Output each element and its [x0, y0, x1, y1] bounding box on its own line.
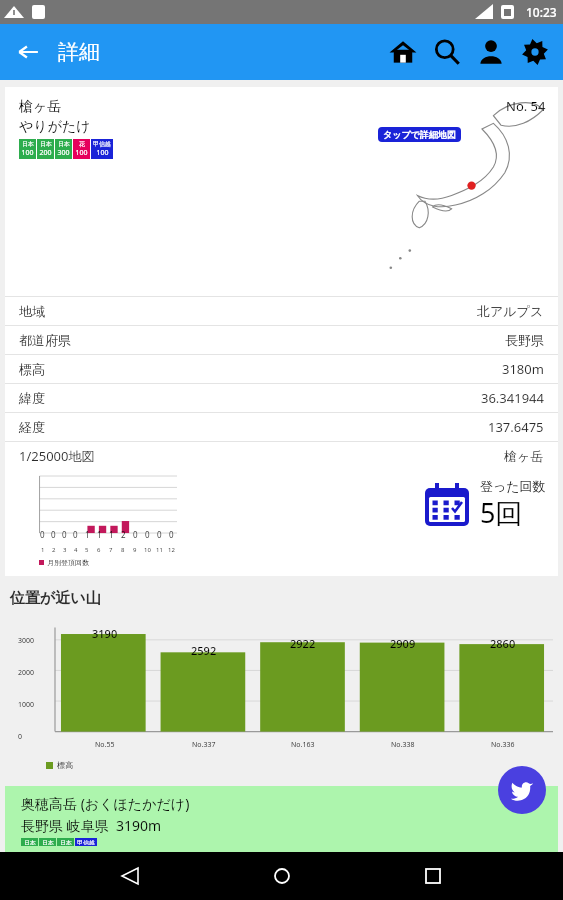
staticText: 0 — [145, 529, 150, 540]
staticText: No.336 — [491, 740, 515, 750]
staticText: 1/25000地図 — [19, 447, 95, 465]
staticText: 8 — [121, 546, 125, 554]
button[interactable]: Home — [381, 30, 425, 74]
staticText: 都道府県 — [19, 332, 71, 348]
staticText: 奥穂高岳 (おくほたかだけ) — [21, 794, 190, 813]
staticText: 0 — [73, 529, 78, 540]
button[interactable]: Share on Twitter — [498, 766, 546, 814]
button[interactable]: Account — [469, 30, 513, 74]
button[interactable]: Back — [8, 32, 48, 72]
staticText: 北アルプス — [477, 303, 544, 319]
staticText: 0 — [40, 529, 45, 540]
staticText: 100 — [96, 148, 109, 158]
staticText: 300 — [57, 148, 70, 158]
staticText: 地域 — [19, 303, 45, 319]
staticText: 月別登頂回数 — [47, 558, 89, 567]
staticText: No.55 — [95, 740, 115, 750]
button[interactable]: 奥穂高岳 (おくほたかだけ) — [5, 786, 558, 852]
staticText: 0 — [18, 732, 23, 742]
staticText: 0 — [62, 529, 67, 540]
staticText: 詳細 — [58, 39, 100, 65]
staticText: 槍ヶ岳 — [504, 448, 544, 464]
button[interactable]: Home — [261, 855, 303, 897]
staticText: 1 — [97, 529, 102, 540]
button[interactable]: 1/25000地図 — [5, 442, 558, 470]
staticText: 7 — [109, 546, 113, 554]
staticText: 36.341944 — [481, 389, 544, 407]
staticText: 1 — [85, 529, 90, 540]
staticText: 日本 — [22, 140, 34, 148]
button[interactable]: 都道府県 — [5, 326, 558, 354]
staticText: 2 — [52, 546, 56, 554]
staticText: タップで詳細地図 — [383, 129, 456, 140]
staticText: 1 — [41, 546, 45, 554]
button[interactable]: 経度 — [5, 413, 558, 441]
staticText: No.163 — [291, 740, 315, 750]
staticText: 1 — [109, 529, 114, 540]
staticText: 0 — [133, 529, 138, 540]
staticText: 12 — [168, 546, 175, 554]
staticText: 10 — [144, 546, 151, 554]
button[interactable]: No. 54 — [5, 87, 558, 576]
staticText: 日本 — [42, 839, 54, 845]
staticText: No.337 — [192, 740, 216, 750]
staticText: 甲信越 — [93, 140, 111, 148]
staticText: 9 — [133, 546, 137, 554]
staticText: 槍ヶ岳 — [19, 98, 62, 116]
staticText: 2000 — [18, 668, 35, 678]
staticText: 200 — [39, 148, 52, 158]
staticText: 緯度 — [19, 390, 45, 406]
staticText: 2909 — [390, 636, 416, 651]
button[interactable]: 標高 — [5, 355, 558, 383]
button[interactable]: タップで詳細地図 — [378, 127, 461, 142]
staticText: 100 — [75, 148, 88, 158]
staticText: No.338 — [391, 740, 415, 750]
staticText: 長野県 — [505, 332, 544, 348]
staticText: 日本 — [58, 140, 70, 148]
staticText: 2860 — [490, 636, 516, 651]
staticText: 3180m — [502, 360, 544, 378]
staticText: 登った回数 — [480, 478, 546, 494]
staticText: 標高 — [57, 760, 73, 770]
staticText: 3000 — [18, 636, 35, 646]
staticText: 0 — [169, 529, 174, 540]
staticText: 標高 — [19, 361, 45, 377]
staticText: 137.6475 — [488, 418, 544, 436]
button[interactable]: Recents — [412, 855, 454, 897]
button[interactable]: Search — [425, 30, 469, 74]
staticText: 5 — [85, 546, 89, 554]
staticText: 100 — [21, 148, 34, 158]
staticText: やりがたけ — [19, 118, 91, 136]
staticText: 6 — [97, 546, 101, 554]
button[interactable]: 緯度 — [5, 384, 558, 412]
staticText: 0 — [51, 529, 56, 540]
staticText: 1000 — [18, 700, 35, 710]
staticText: 4 — [74, 546, 78, 554]
staticText: 11 — [156, 546, 163, 554]
staticText: 3 — [63, 546, 67, 554]
staticText: 甲信越 — [77, 839, 95, 845]
staticText: 5回 — [480, 494, 523, 531]
staticText: 位置が近い山 — [10, 589, 101, 608]
staticText: 10:23 — [526, 4, 557, 20]
staticText: 日本 — [24, 839, 36, 845]
staticText: 日本 — [60, 839, 72, 845]
staticText: 日本 — [40, 140, 52, 148]
staticText: 長野県 岐阜県 3190m — [21, 816, 162, 835]
button[interactable]: Back — [109, 855, 151, 897]
staticText: 2592 — [191, 643, 217, 658]
staticText: 3190 — [92, 626, 118, 641]
staticText: 2922 — [290, 636, 316, 651]
staticText: 花 — [79, 140, 85, 148]
staticText: No. 54 — [506, 97, 546, 115]
staticText: 2 — [121, 529, 126, 540]
staticText: 経度 — [19, 419, 45, 435]
button[interactable]: 地域 — [5, 297, 558, 325]
button[interactable]: Settings — [513, 30, 557, 74]
staticText: 0 — [157, 529, 162, 540]
